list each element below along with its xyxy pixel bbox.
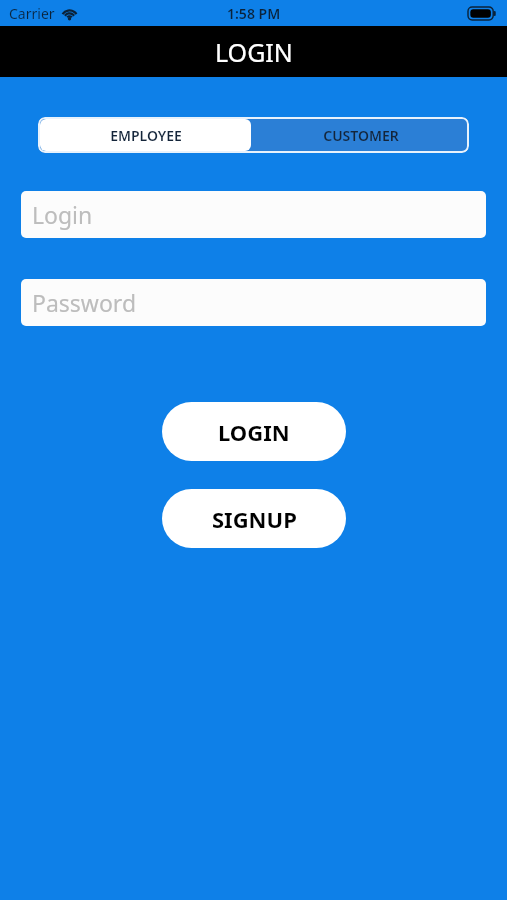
button[interactable]: CUSTOMER — [253, 117, 469, 153]
staticText: Login — [32, 199, 93, 230]
staticText: Carrier — [9, 4, 55, 23]
staticText: SIGNUP — [212, 504, 297, 534]
staticText: CUSTOMER — [323, 126, 399, 145]
staticText: 1:58 PM — [227, 4, 281, 23]
button[interactable]: LOGIN — [162, 402, 346, 461]
button[interactable]: SIGNUP — [162, 489, 346, 548]
staticText: LOGIN — [218, 417, 290, 447]
staticText: EMPLOYEE — [110, 126, 182, 145]
staticText: LOGIN — [215, 35, 293, 69]
staticText: Password — [32, 287, 137, 318]
button[interactable]: Password — [21, 279, 486, 326]
button[interactable]: Login — [21, 191, 486, 238]
button[interactable]: EMPLOYEE — [40, 119, 251, 151]
